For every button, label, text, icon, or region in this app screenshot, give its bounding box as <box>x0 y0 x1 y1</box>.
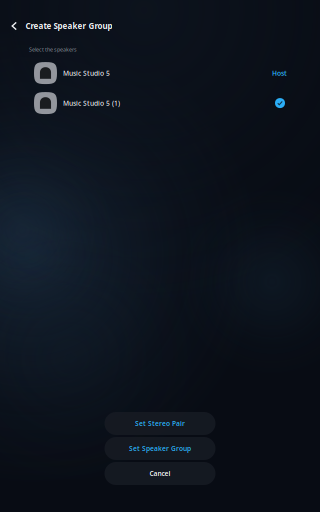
button[interactable]: Set Speaker Group <box>104 437 215 460</box>
staticText: Music Studio 5 <box>63 69 110 78</box>
button[interactable]: Cancel <box>104 462 215 485</box>
button[interactable]: Music Studio 5 <box>0 58 320 88</box>
button[interactable]: Back <box>0 16 25 36</box>
staticText: Set Stereo Pair <box>135 419 185 428</box>
staticText: Select the speakers <box>29 46 77 53</box>
staticText: Music Studio 5 (1) <box>63 99 120 108</box>
staticText: Set Speaker Group <box>129 444 191 453</box>
button[interactable]: Set Stereo Pair <box>104 412 215 435</box>
staticText: Host <box>272 69 287 78</box>
staticText: Cancel <box>149 469 170 478</box>
staticText: Create Speaker Group <box>25 21 112 31</box>
button[interactable]: Music Studio 5 (1) <box>0 88 320 118</box>
